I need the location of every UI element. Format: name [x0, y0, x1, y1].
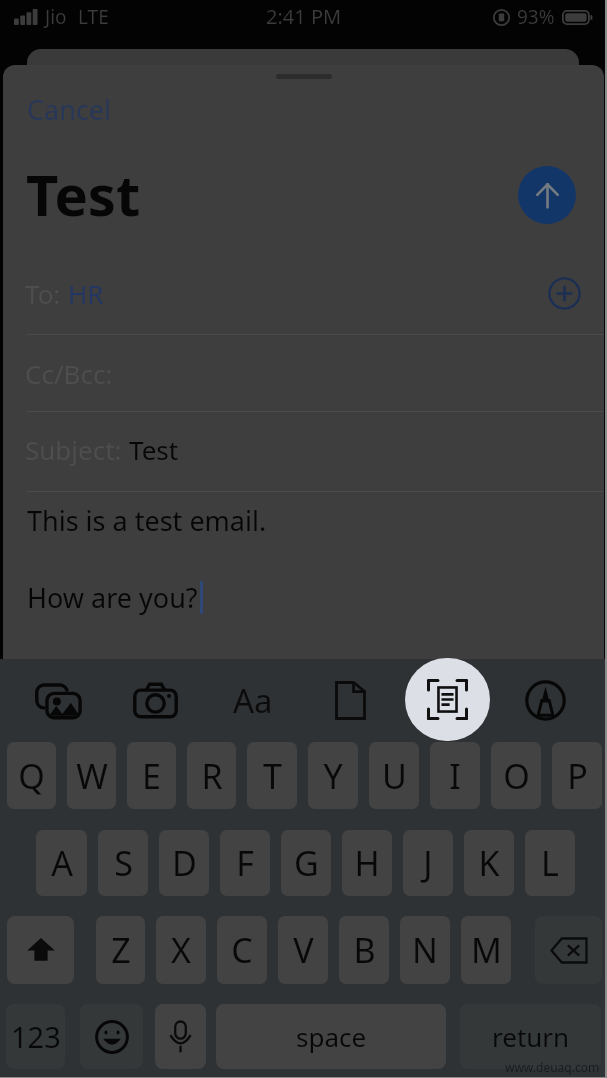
- button[interactable]: Photos: [27, 659, 89, 742]
- staticText: T: [263, 753, 282, 799]
- staticText: W: [76, 753, 108, 799]
- staticText: Cc/Bcc:: [25, 356, 113, 391]
- staticText: U: [382, 753, 407, 799]
- staticText: J: [423, 840, 433, 886]
- staticText: return: [492, 1019, 570, 1054]
- staticText: 2:41 PM: [266, 3, 342, 30]
- button[interactable]: X: [156, 916, 206, 984]
- button[interactable]: Q: [7, 742, 56, 809]
- staticText: www.deuaq.com: [505, 1059, 600, 1075]
- staticText: B: [353, 927, 376, 973]
- staticText: F: [236, 840, 254, 886]
- staticText: S: [114, 840, 133, 886]
- staticText: H: [354, 840, 380, 886]
- staticText: R: [201, 753, 223, 799]
- button[interactable]: M: [461, 916, 511, 984]
- staticText: Subject:: [25, 432, 129, 467]
- button[interactable]: Send: [518, 166, 576, 224]
- staticText: Z: [111, 927, 131, 973]
- staticText: Y: [323, 753, 343, 799]
- button[interactable]: R: [187, 742, 236, 809]
- button[interactable]: V: [278, 916, 328, 984]
- button[interactable]: I: [430, 742, 480, 809]
- staticText: Test: [129, 432, 179, 467]
- button[interactable]: Attach file: [319, 659, 381, 742]
- staticText: This is a test email.: [27, 502, 267, 539]
- staticText: Q: [18, 753, 45, 799]
- button[interactable]: E: [127, 742, 176, 809]
- staticText: 93%: [517, 4, 555, 30]
- staticText: HR: [68, 276, 104, 311]
- button[interactable]: C: [217, 916, 267, 984]
- staticText: D: [172, 840, 197, 886]
- button[interactable]: U: [369, 742, 419, 809]
- staticText: L: [541, 840, 559, 886]
- staticText: K: [478, 840, 500, 886]
- staticText: G: [294, 840, 319, 886]
- button[interactable]: W: [67, 742, 116, 809]
- button[interactable]: space: [216, 1004, 446, 1069]
- button[interactable]: T: [247, 742, 297, 809]
- button[interactable]: Subject:: [25, 410, 604, 489]
- button[interactable]: Z: [96, 916, 145, 984]
- button[interactable]: L: [525, 830, 575, 896]
- staticText: Test: [26, 156, 141, 232]
- staticText: LTE: [78, 4, 109, 30]
- button[interactable]: Shift: [7, 916, 74, 984]
- staticText: P: [567, 753, 588, 799]
- staticText: Jio: [45, 4, 67, 30]
- staticText: A: [51, 840, 73, 886]
- staticText: M: [471, 927, 502, 973]
- button[interactable]: Dictate: [155, 1004, 206, 1069]
- button[interactable]: Y: [308, 742, 358, 809]
- staticText: To:: [25, 276, 68, 311]
- button[interactable]: Format text: [222, 659, 284, 742]
- staticText: E: [142, 753, 161, 799]
- button[interactable]: D: [159, 830, 209, 896]
- button[interactable]: return: [460, 1004, 601, 1069]
- staticText: 123: [11, 1017, 61, 1056]
- button[interactable]: Add contact: [546, 275, 582, 311]
- button[interactable]: N: [400, 916, 450, 984]
- button[interactable]: 123: [6, 1004, 65, 1069]
- button[interactable]: P: [552, 742, 602, 809]
- button[interactable]: B: [339, 916, 389, 984]
- staticText: N: [412, 927, 438, 973]
- button[interactable]: To:: [25, 261, 582, 325]
- staticText: C: [231, 927, 253, 973]
- button[interactable]: J: [403, 830, 453, 896]
- staticText: space: [296, 1019, 367, 1054]
- button[interactable]: Camera: [124, 659, 186, 742]
- button[interactable]: Emoji: [80, 1004, 143, 1069]
- button[interactable]: Cancel: [3, 87, 604, 131]
- button[interactable]: Scan document: [405, 658, 490, 741]
- staticText: How are you?: [27, 579, 198, 616]
- staticText: O: [503, 753, 530, 799]
- staticText: I: [449, 753, 461, 799]
- staticText: V: [293, 927, 314, 973]
- staticText: X: [171, 927, 191, 973]
- button[interactable]: G: [281, 830, 331, 896]
- staticText: Cancel: [27, 91, 112, 128]
- button[interactable]: S: [98, 830, 148, 896]
- button[interactable]: K: [464, 830, 514, 896]
- button[interactable]: O: [491, 742, 541, 809]
- button[interactable]: H: [342, 830, 392, 896]
- button[interactable]: A: [36, 830, 87, 896]
- button[interactable]: F: [220, 830, 270, 896]
- button[interactable]: Markup: [514, 659, 576, 742]
- staticText: Aa: [233, 678, 273, 723]
- button[interactable]: Backspace: [535, 916, 602, 984]
